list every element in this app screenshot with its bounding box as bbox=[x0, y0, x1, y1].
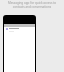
staticText: Messaging app for quick access to contac… bbox=[3, 1, 61, 9]
